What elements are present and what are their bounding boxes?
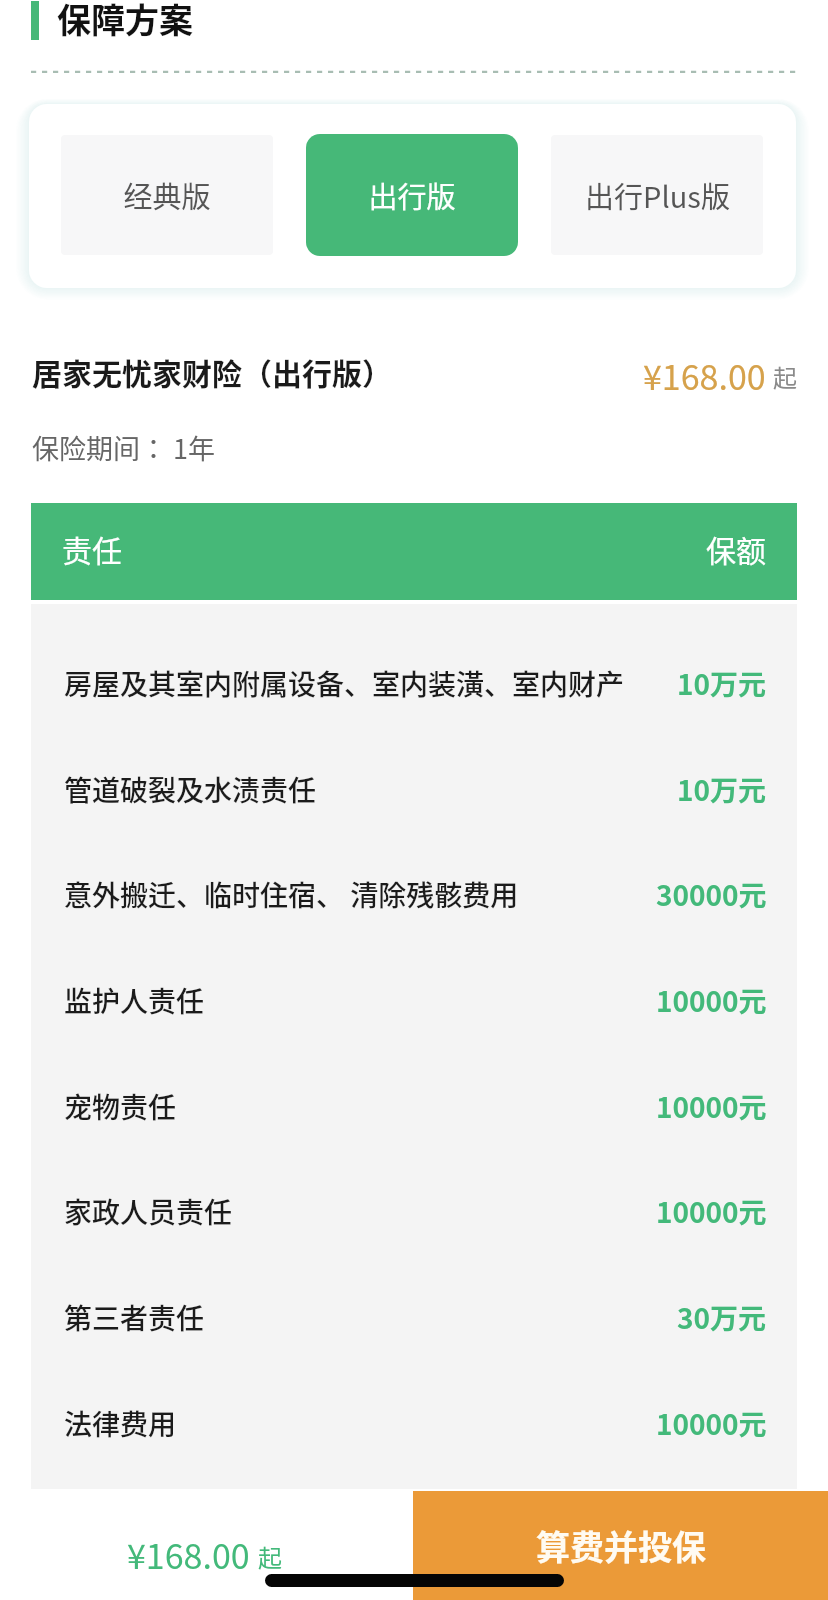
staticText: 第三者责任 [64, 1297, 205, 1338]
staticText: 30000元 [656, 874, 767, 915]
staticText: 房屋及其室内附属设备、室内装潢、室内财产 [64, 663, 625, 704]
button[interactable]: 意外搬迁、临时住宿、 清除残骸费用 [31, 841, 797, 947]
staticText: 算费并投保 [536, 1521, 706, 1570]
button[interactable]: 算费并投保 [413, 1491, 828, 1600]
staticText: 出行版 [368, 174, 456, 216]
button[interactable]: 出行版 [306, 134, 518, 256]
button[interactable]: 监护人责任 [31, 947, 797, 1053]
staticText: 监护人责任 [64, 980, 205, 1021]
staticText: 10000元 [656, 1191, 767, 1232]
other: Home indicator [265, 1574, 564, 1587]
staticText: 10000元 [656, 1086, 767, 1127]
staticText: 10000元 [656, 1403, 767, 1444]
staticText: 保额 [706, 527, 766, 570]
staticText: 10万元 [677, 663, 767, 704]
staticText: 起 [258, 1539, 282, 1574]
staticText: 意外搬迁、临时住宿、 清除残骸费用 [64, 874, 519, 915]
button[interactable]: 房屋及其室内附属设备、室内装潢、室内财产 [31, 630, 797, 736]
staticText: 30万元 [677, 1297, 767, 1338]
staticText: 保险期间： 1年 [32, 428, 216, 467]
staticText: 法律费用 [64, 1403, 177, 1444]
button[interactable]: 法律费用 [31, 1370, 797, 1476]
button[interactable]: ¥168.00 [127, 1530, 282, 1579]
staticText: 管道破裂及水渍责任 [64, 769, 317, 810]
button[interactable]: 责任 [31, 503, 797, 600]
staticText: 起 [773, 359, 797, 394]
staticText: 保障方案 [57, 0, 193, 43]
staticText: 10万元 [677, 769, 767, 810]
staticText: ¥168.00 [643, 351, 766, 400]
staticText: 责任 [62, 527, 122, 570]
staticText: 经典版 [123, 174, 211, 216]
staticText: 10000元 [656, 980, 767, 1021]
button[interactable]: 家政人员责任 [31, 1158, 797, 1264]
staticText: 宠物责任 [64, 1086, 177, 1127]
staticText: 出行Plus版 [585, 174, 730, 216]
staticText: 家政人员责任 [64, 1191, 233, 1232]
staticText: 居家无忧家财险（出行版） [32, 350, 392, 393]
staticText: ¥168.00 [127, 1530, 250, 1579]
button[interactable]: 第三者责任 [31, 1264, 797, 1370]
button[interactable]: 出行Plus版 [551, 135, 763, 255]
button[interactable]: 经典版 [61, 135, 273, 255]
button[interactable]: 管道破裂及水渍责任 [31, 736, 797, 842]
button[interactable]: 宠物责任 [31, 1053, 797, 1159]
